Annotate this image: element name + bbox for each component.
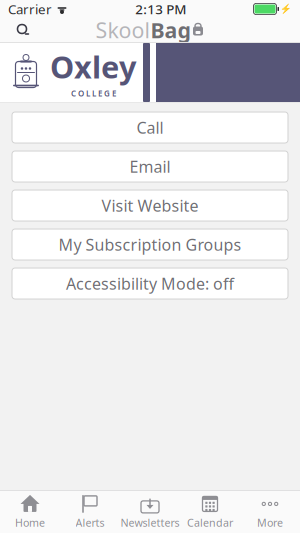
staticText: More — [257, 515, 283, 530]
staticText: Skool — [95, 16, 150, 44]
staticText: Visit Website — [101, 195, 198, 216]
button[interactable]: My Subscription Groups — [12, 229, 288, 260]
staticText: Alerts — [75, 515, 104, 530]
button[interactable]: Email — [12, 151, 288, 182]
staticText: 2:13 PM — [135, 0, 186, 18]
button[interactable]: Accessibility Mode: off — [12, 268, 288, 299]
staticText: C O L L E G E — [71, 88, 116, 99]
staticText: Calendar — [187, 515, 233, 530]
staticText: Accessibility Mode: off — [66, 273, 234, 294]
staticText: Carrier — [8, 0, 52, 18]
staticText: Oxley — [50, 46, 137, 87]
staticText: Call — [136, 117, 163, 138]
button[interactable]: Call — [12, 112, 288, 143]
button[interactable]: Alerts — [60, 491, 120, 533]
staticText: Bag — [150, 16, 190, 44]
staticText: Newsletters — [120, 515, 179, 530]
button[interactable]: Newsletters — [120, 491, 180, 533]
button[interactable]: Calendar — [180, 491, 240, 533]
button[interactable]: Home — [0, 491, 60, 533]
button[interactable]: Search — [6, 16, 40, 44]
button[interactable]: More — [240, 491, 300, 533]
staticText: Email — [129, 156, 170, 177]
staticText: My Subscription Groups — [58, 234, 241, 255]
button[interactable]: Visit Website — [12, 190, 288, 221]
staticText: ⚡ — [280, 4, 292, 14]
staticText: Home — [15, 515, 45, 530]
